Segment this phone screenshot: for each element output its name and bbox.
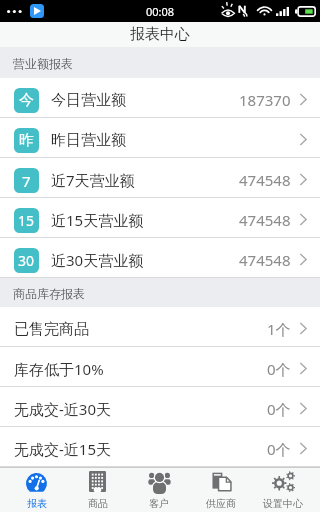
staticText: 0个 [267, 359, 291, 379]
staticText: 已售完商品 [14, 320, 89, 339]
staticText: 近15天营业额 [51, 210, 144, 230]
button[interactable]: 今 [0, 78, 320, 118]
staticText: 474548 [239, 170, 291, 190]
staticText: 0个 [267, 439, 291, 459]
staticText: 昨 [19, 131, 34, 150]
staticText: 报表中心 [130, 25, 190, 44]
staticText: 00:08 [146, 4, 175, 19]
button[interactable]: 昨 [0, 118, 320, 158]
staticText: 近7天营业额 [51, 170, 135, 190]
button[interactable]: 设置中心 [252, 468, 314, 512]
button[interactable]: 库存低于10% [0, 347, 320, 387]
button[interactable]: 无成交-近30天 [0, 387, 320, 427]
staticText: 1个 [267, 319, 291, 339]
staticText: 30 [18, 251, 35, 270]
staticText: 客户 [149, 497, 169, 510]
button[interactable]: 7 [0, 158, 320, 198]
staticText: 无成交-近15天 [14, 439, 111, 459]
staticText: 营业额报表 [13, 56, 73, 71]
button[interactable]: 供应商 [190, 468, 252, 512]
staticText: 昨日营业额 [51, 131, 126, 150]
staticText: 无成交-近30天 [14, 399, 111, 419]
staticText: 474548 [239, 210, 291, 230]
staticText: 187370 [239, 90, 291, 110]
staticText: 474548 [239, 250, 291, 270]
staticText: 报表 [27, 497, 47, 510]
button[interactable]: 无成交-近15天 [0, 427, 320, 467]
button[interactable]: 商品 [67, 468, 128, 512]
staticText: 今日营业额 [51, 91, 126, 110]
staticText: 库存低于10% [14, 359, 104, 379]
staticText: 商品 [88, 497, 108, 510]
staticText: 近30天营业额 [51, 250, 144, 270]
button[interactable]: 客户 [128, 468, 190, 512]
staticText: 设置中心 [263, 497, 303, 510]
button[interactable]: 30 [0, 238, 320, 278]
staticText: 7 [22, 171, 31, 191]
button[interactable]: 15 [0, 198, 320, 238]
staticText: 0个 [267, 399, 291, 419]
button[interactable]: 已售完商品 [0, 307, 320, 347]
button[interactable]: 报表 [6, 468, 67, 512]
staticText: 今 [19, 91, 34, 110]
staticText: 商品库存报表 [13, 286, 85, 301]
staticText: 15 [18, 211, 35, 230]
staticText: 供应商 [206, 497, 236, 510]
